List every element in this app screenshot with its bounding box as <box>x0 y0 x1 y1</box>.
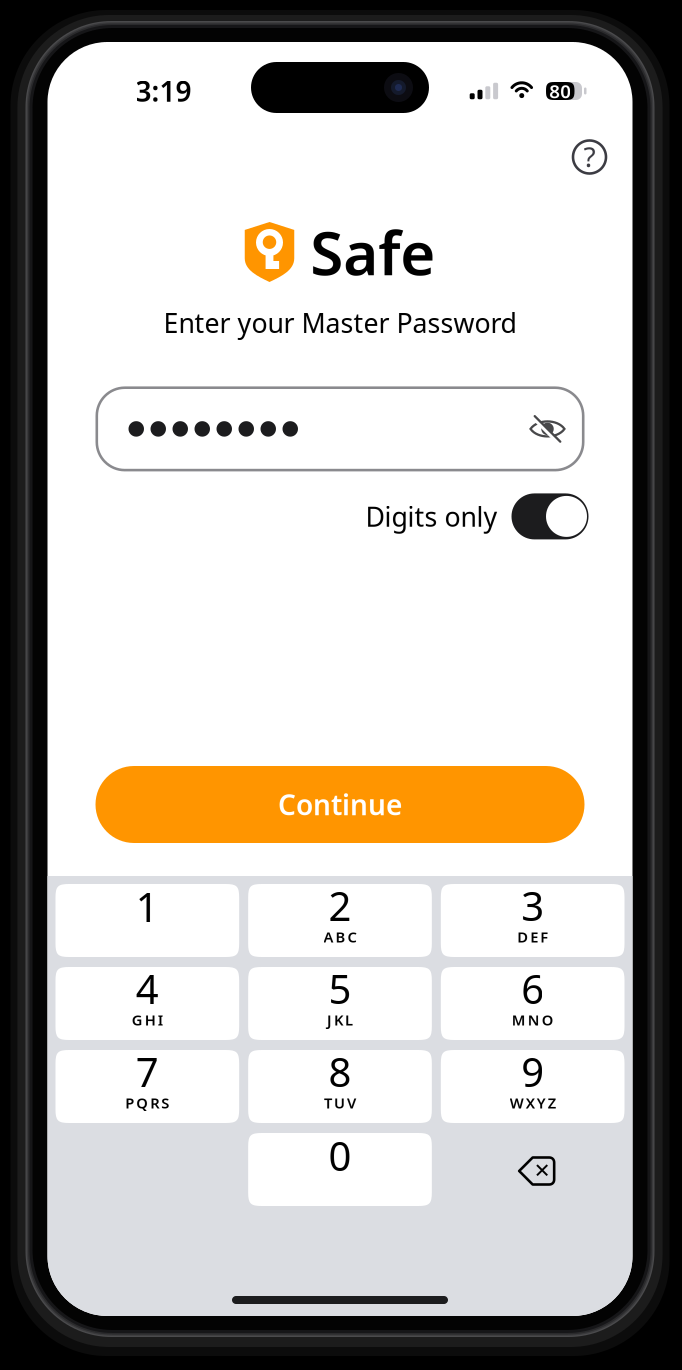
staticText: MNO <box>512 1010 554 1030</box>
staticText: 7 <box>136 1045 159 1098</box>
staticText: Continue <box>278 786 402 823</box>
staticText: 5 <box>328 962 351 1015</box>
staticText: ? <box>583 138 595 175</box>
button[interactable]: 4 <box>55 967 239 1040</box>
staticText: JKL <box>327 1010 353 1030</box>
staticText: 4 <box>136 962 159 1015</box>
button[interactable]: Show password <box>527 413 567 445</box>
staticText: PQRS <box>125 1093 169 1113</box>
button[interactable]: 2 <box>248 884 432 957</box>
button[interactable]: 9 <box>441 1050 624 1123</box>
button[interactable]: 8 <box>248 1050 432 1123</box>
button[interactable]: 1 <box>55 884 239 957</box>
button[interactable]: Continue <box>95 766 584 843</box>
staticText: 8 <box>328 1045 351 1098</box>
staticText: ABC <box>323 927 356 947</box>
button[interactable]: Digits only <box>511 493 588 539</box>
staticText: Safe <box>310 212 435 292</box>
staticText: ✕ <box>534 1159 551 1182</box>
button[interactable]: 0 <box>248 1133 432 1206</box>
staticText: 6 <box>521 962 544 1015</box>
button[interactable]: 3 <box>441 884 624 957</box>
staticText: 1 <box>136 880 159 933</box>
staticText: 3:19 <box>135 72 191 110</box>
staticText: WXYZ <box>510 1093 556 1113</box>
button[interactable]: 5 <box>248 967 432 1040</box>
button[interactable]: Delete <box>441 1133 624 1206</box>
staticText: 0 <box>328 1129 351 1182</box>
button[interactable]: 6 <box>441 967 624 1040</box>
staticText: Digits only <box>365 499 497 534</box>
button[interactable]: 7 <box>55 1050 239 1123</box>
staticText: 9 <box>521 1045 544 1098</box>
staticText: DEF <box>517 927 548 947</box>
staticText: Enter your Master Password <box>163 305 516 340</box>
staticText: TUV <box>324 1093 356 1113</box>
staticText: 80 <box>549 79 571 103</box>
staticText: 2 <box>328 879 351 932</box>
staticText: 3 <box>521 879 544 932</box>
button[interactable]: Help <box>566 134 612 180</box>
staticText: GHI <box>132 1010 163 1030</box>
